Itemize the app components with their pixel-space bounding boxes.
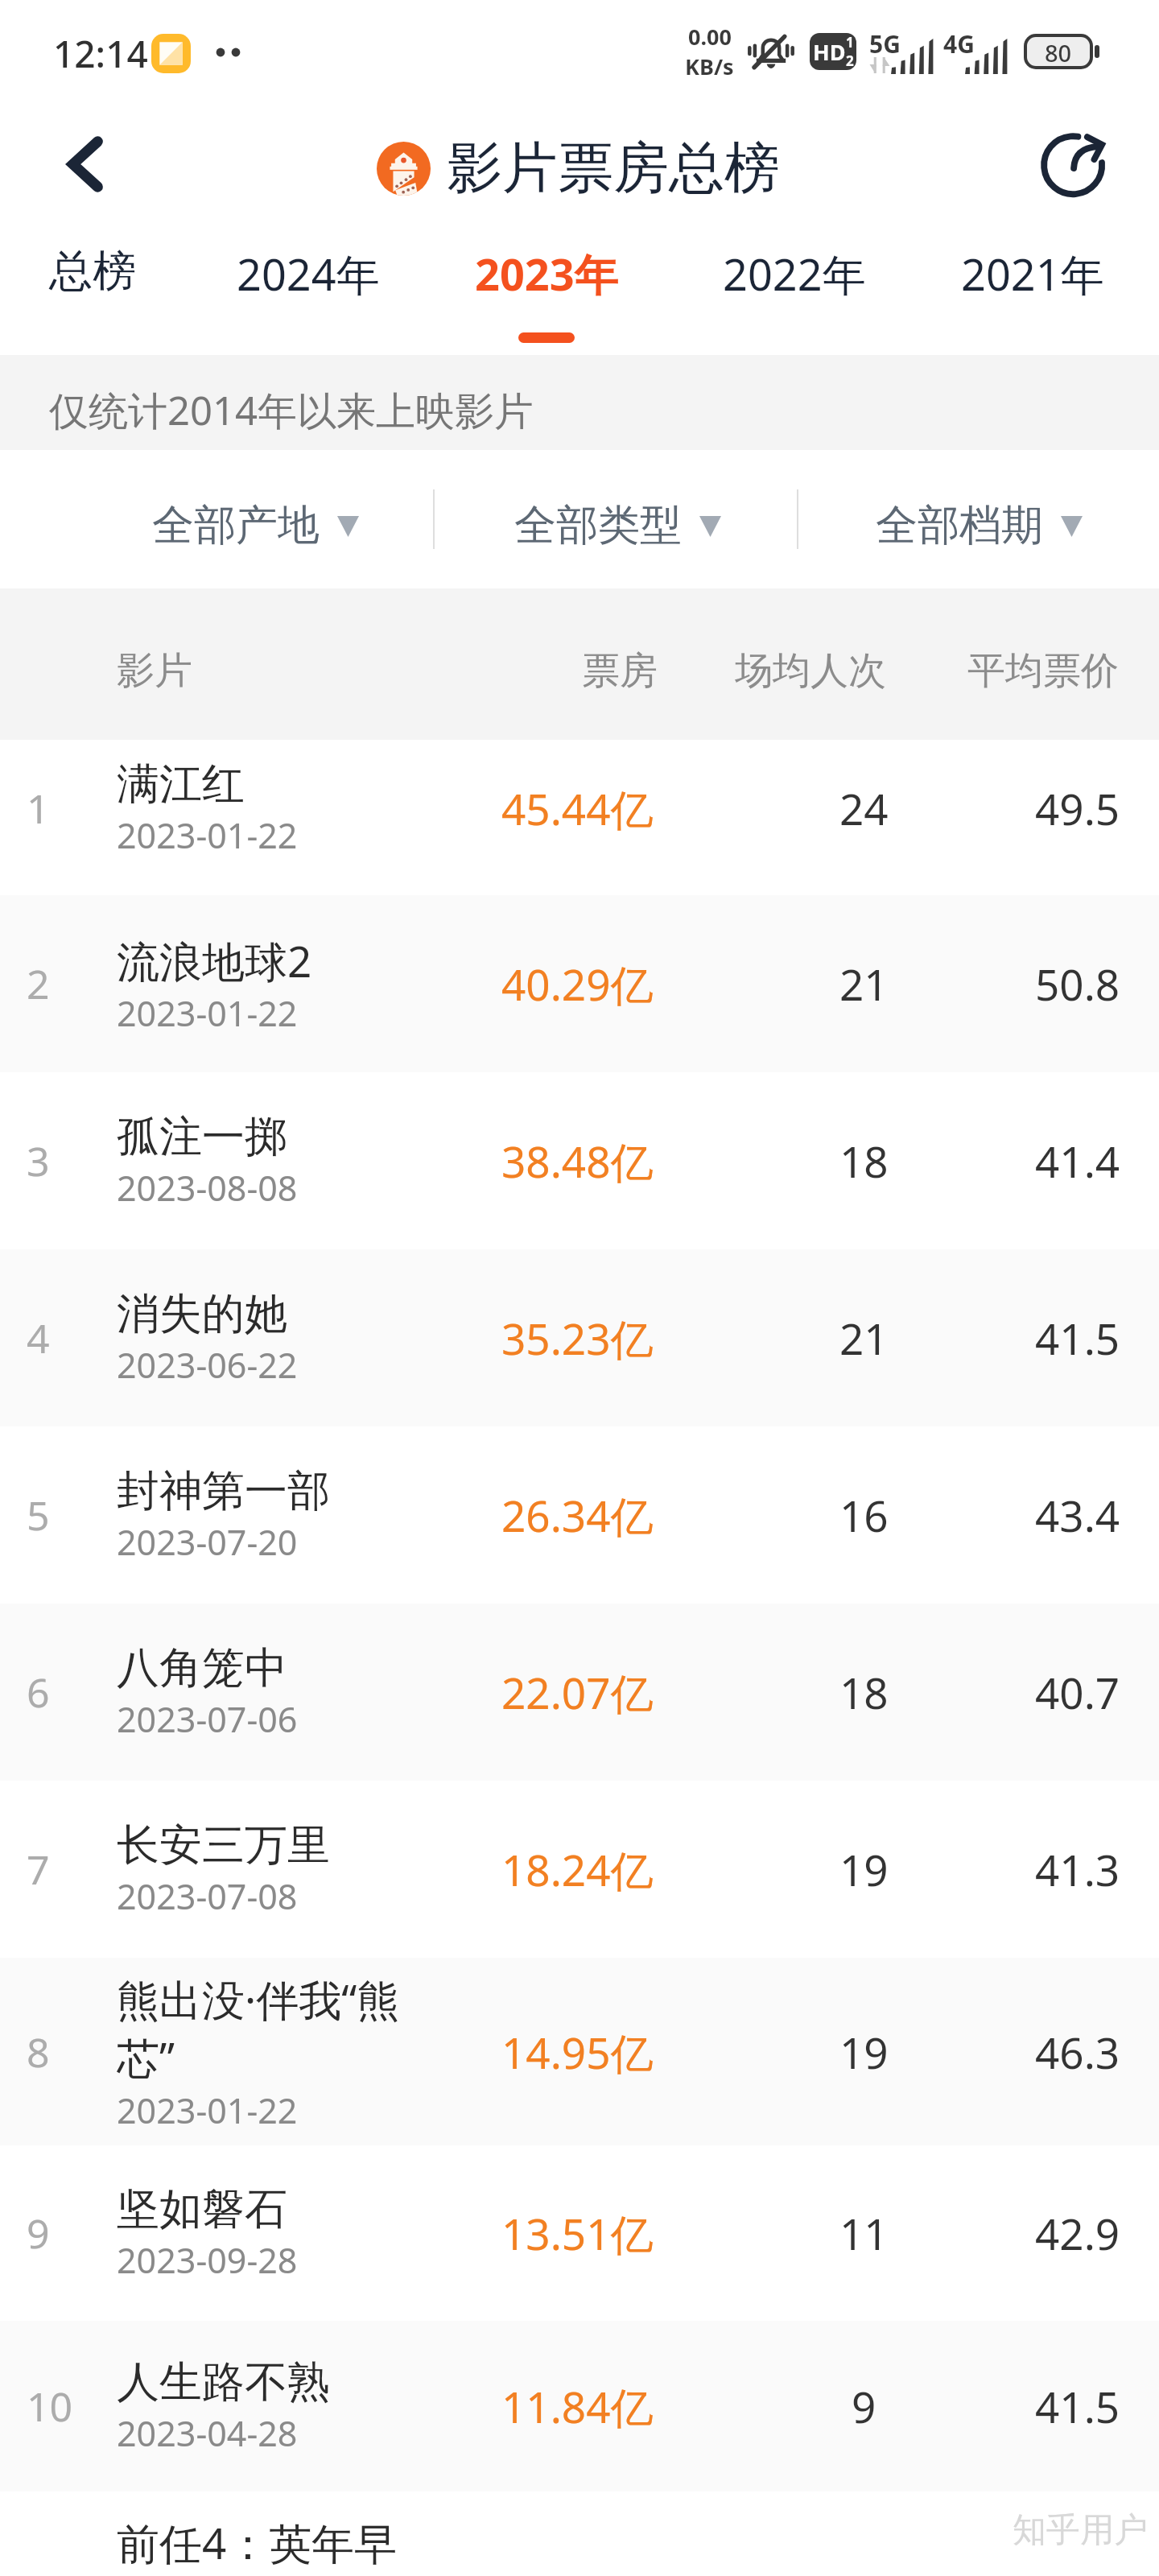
staticText: 19 (839, 1840, 889, 1898)
staticText: 40.29亿 (501, 955, 654, 1013)
staticText: 5 (27, 1488, 107, 1542)
staticText: 3 (27, 1133, 107, 1188)
staticText: 消失的她 (117, 1287, 287, 1341)
staticText: 2023-07-20 (117, 1518, 298, 1566)
staticText: 1 (846, 33, 854, 52)
staticText: 票房 (582, 647, 658, 695)
staticText: 40.7 (1035, 1663, 1120, 1721)
staticText: 全部类型 (514, 499, 682, 552)
staticText: 12:14 (53, 28, 148, 79)
staticText: 6 (27, 1665, 107, 1719)
staticText: 0.00 (688, 22, 732, 52)
staticText: 2023-06-22 (117, 1341, 298, 1389)
staticText: 总榜 (49, 244, 136, 299)
staticText: 人生路不熟 (117, 2355, 330, 2409)
staticText: 2023-01-22 (117, 989, 298, 1037)
staticText: 16 (839, 1486, 889, 1544)
staticText: 平均票价 (967, 647, 1119, 695)
staticText: 2023-01-22 (117, 811, 298, 859)
button[interactable]: 2022年 (674, 225, 915, 355)
staticText: 18 (839, 1132, 889, 1190)
staticText: 18 (839, 1663, 889, 1721)
staticText: 仅统计2014年以来上映影片 (49, 383, 534, 437)
staticText: 26.34亿 (501, 1486, 654, 1544)
staticText: 21 (839, 955, 889, 1013)
staticText: 49.5 (1035, 779, 1120, 837)
staticText: 11.84亿 (501, 2377, 654, 2435)
staticText: 2023年 (475, 244, 618, 303)
button[interactable]: 2024年 (188, 225, 429, 355)
staticText: 41.5 (1035, 2377, 1120, 2435)
staticText: 全部产地 (152, 499, 320, 552)
staticText: 坚如磐石 (117, 2182, 287, 2236)
staticText: HD (813, 37, 846, 67)
staticText: 2022年 (723, 244, 866, 303)
button[interactable]: 9 (0, 2145, 1159, 2321)
button[interactable]: 全部档期 (834, 450, 1124, 588)
staticText: 9 (852, 2377, 876, 2435)
staticText: 14.95亿 (501, 2023, 654, 2081)
staticText: 50.8 (1035, 955, 1120, 1013)
staticText: 2021年 (961, 244, 1104, 303)
staticText: 11 (839, 2204, 889, 2262)
button[interactable]: 5 (0, 1426, 1159, 1604)
button[interactable]: 3 (0, 1072, 1159, 1249)
staticText: 19 (839, 2023, 889, 2081)
staticText: 13.51亿 (501, 2204, 654, 2262)
staticText: 2023-07-08 (117, 1872, 298, 1920)
staticText: 前任4：英年早 (117, 2513, 398, 2571)
staticText: 熊出没·伴我“熊芯” (117, 1970, 419, 2087)
staticText: 流浪地球2 (117, 931, 312, 989)
button[interactable]: 2023年 (426, 225, 667, 355)
button[interactable]: 全部类型 (472, 450, 762, 588)
button[interactable]: 总榜 (0, 225, 213, 355)
staticText: 4 (27, 1311, 107, 1365)
staticText: 10 (27, 2379, 107, 2434)
button[interactable]: Back (0, 97, 174, 225)
staticText: 41.4 (1035, 1132, 1120, 1190)
staticText: 知乎用户 (1013, 2509, 1148, 2552)
staticText: 2023-04-28 (117, 2409, 298, 2457)
button[interactable]: 全部产地 (110, 450, 400, 588)
staticText: 2 (846, 52, 854, 70)
staticText: 2024年 (237, 244, 380, 303)
button[interactable]: 8 (0, 1958, 1159, 2145)
button[interactable]: 7 (0, 1781, 1159, 1958)
staticText: 4G (943, 27, 975, 60)
button[interactable]: 2 (0, 895, 1159, 1072)
staticText: 24 (839, 779, 889, 837)
staticText: 21 (839, 1309, 889, 1367)
button[interactable]: Share (985, 97, 1159, 225)
staticText: 35.23亿 (501, 1309, 654, 1367)
staticText: 长安三万里 (117, 1818, 330, 1872)
staticText: 45.44亿 (501, 779, 654, 837)
button[interactable]: 2021年 (912, 225, 1153, 355)
staticText: 八角笼中 (117, 1641, 287, 1695)
staticText: 场均人次 (735, 647, 886, 695)
button[interactable]: 6 (0, 1604, 1159, 1781)
staticText: 8 (27, 2025, 107, 2079)
staticText: 孤注一掷 (117, 1110, 287, 1164)
staticText: 5G (869, 27, 901, 60)
staticText: 43.4 (1035, 1486, 1120, 1544)
staticText: KB/s (685, 52, 734, 81)
button[interactable]: 4 (0, 1249, 1159, 1426)
staticText: 满江红 (117, 758, 245, 811)
staticText: 41.3 (1035, 1840, 1120, 1898)
staticText: 1 (27, 781, 107, 836)
staticText: 影片票房总榜 (447, 134, 780, 204)
staticText: 18.24亿 (501, 1840, 654, 1898)
staticText: 2 (27, 956, 107, 1011)
staticText: 41.5 (1035, 1309, 1120, 1367)
staticText: 2023-01-22 (117, 2087, 298, 2134)
staticText: 封神第一部 (117, 1464, 330, 1518)
staticText: 2023-08-08 (117, 1164, 298, 1212)
staticText: 38.48亿 (501, 1132, 654, 1190)
button[interactable]: 1 (0, 740, 1159, 895)
button[interactable]: 10 (0, 2321, 1159, 2491)
staticText: 9 (27, 2206, 107, 2260)
staticText: 46.3 (1035, 2023, 1120, 2081)
staticText: 全部档期 (876, 499, 1043, 552)
staticText: 42.9 (1035, 2204, 1120, 2262)
staticText: 2023-07-06 (117, 1695, 298, 1743)
